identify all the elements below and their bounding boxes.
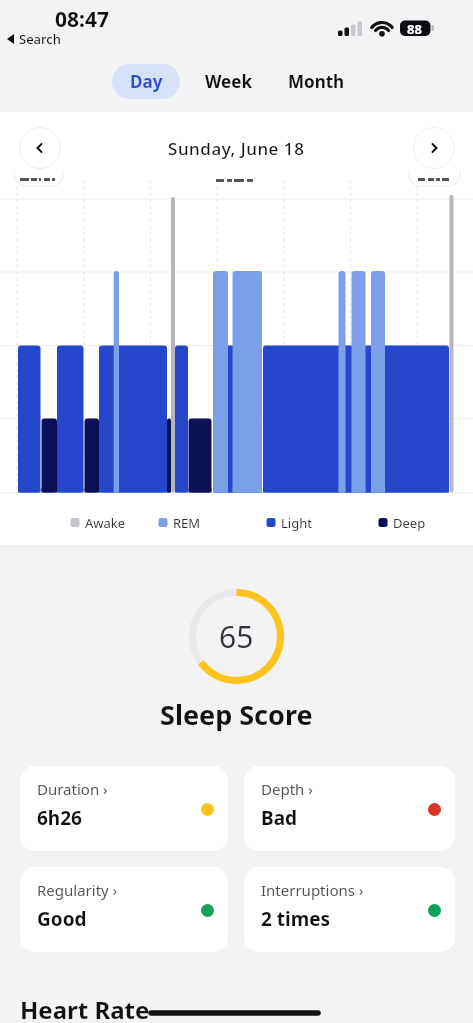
button[interactable]: Week (197, 64, 259, 99)
staticText: 2 times (261, 906, 331, 932)
staticText: Sunday, June 18 (168, 137, 305, 160)
staticText: Interruptions › (261, 880, 364, 900)
staticText: Good (37, 906, 87, 932)
staticText: Sleep Score (160, 696, 313, 733)
staticText: Search (19, 30, 61, 48)
staticText: REM (173, 514, 201, 532)
staticText: Month (288, 70, 345, 93)
button[interactable]: Month (280, 64, 352, 99)
button[interactable] (19, 127, 61, 169)
button[interactable]: Duration › (20, 766, 228, 851)
staticText: 08:47 (55, 5, 109, 34)
staticText: Day (130, 70, 163, 93)
staticText: 65 (219, 616, 254, 657)
button[interactable]: Day (112, 64, 180, 99)
button[interactable] (413, 127, 455, 169)
staticText: Duration › (37, 779, 108, 799)
staticText: Light (281, 514, 312, 532)
staticText: Depth › (261, 779, 313, 799)
staticText: 88 (407, 20, 422, 36)
staticText: Bad (261, 805, 298, 831)
staticText: Week (205, 70, 252, 93)
staticText: Deep (393, 514, 426, 532)
button[interactable]: Interruptions › (244, 867, 455, 952)
button[interactable]: Depth › (244, 766, 455, 851)
staticText: 6h26 (37, 805, 82, 831)
staticText: Regularity › (37, 880, 118, 900)
staticText: Heart Rate (20, 993, 150, 1023)
button[interactable]: Regularity › (20, 867, 228, 952)
staticText: Awake (85, 514, 126, 532)
